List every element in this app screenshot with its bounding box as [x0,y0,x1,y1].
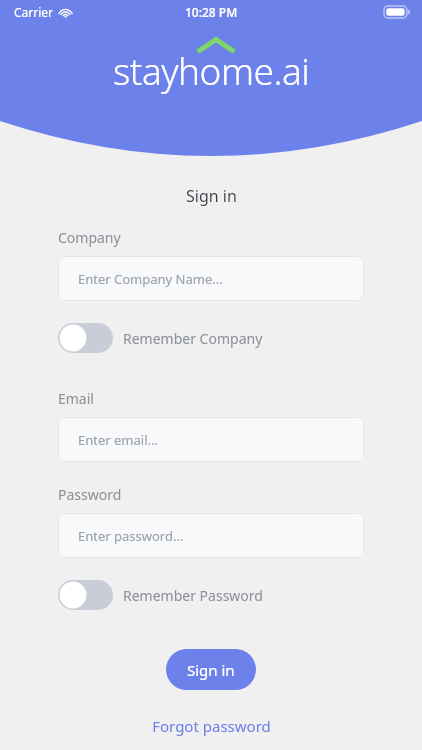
staticText: Company [58,228,121,247]
staticText: Remember Password [123,586,263,605]
staticText: Sign in [187,660,235,680]
other: Remember Password [58,580,113,610]
staticText: Carrier [14,4,54,20]
button[interactable]: Remember Password [58,580,263,610]
staticText: Remember Company [123,329,263,348]
staticText: 10:28 PM [185,4,238,20]
staticText: stayhome.ai [113,45,310,95]
button[interactable]: Sign in [166,649,256,690]
staticText: Email [58,389,94,408]
staticText: Enter email... [78,431,158,449]
staticText: Enter Company Name... [78,270,223,288]
staticText: Sign in [186,185,237,207]
button[interactable]: Remember Company [58,323,263,353]
staticText: Enter password... [78,527,184,545]
button[interactable]: Enter email... [58,417,364,462]
button[interactable]: Enter password... [58,513,364,558]
button[interactable]: Forgot password [144,712,279,740]
staticText: Forgot password [152,716,271,736]
button[interactable]: Enter Company Name... [58,256,364,301]
staticText: Password [58,485,122,504]
other: Remember Company [58,323,113,353]
